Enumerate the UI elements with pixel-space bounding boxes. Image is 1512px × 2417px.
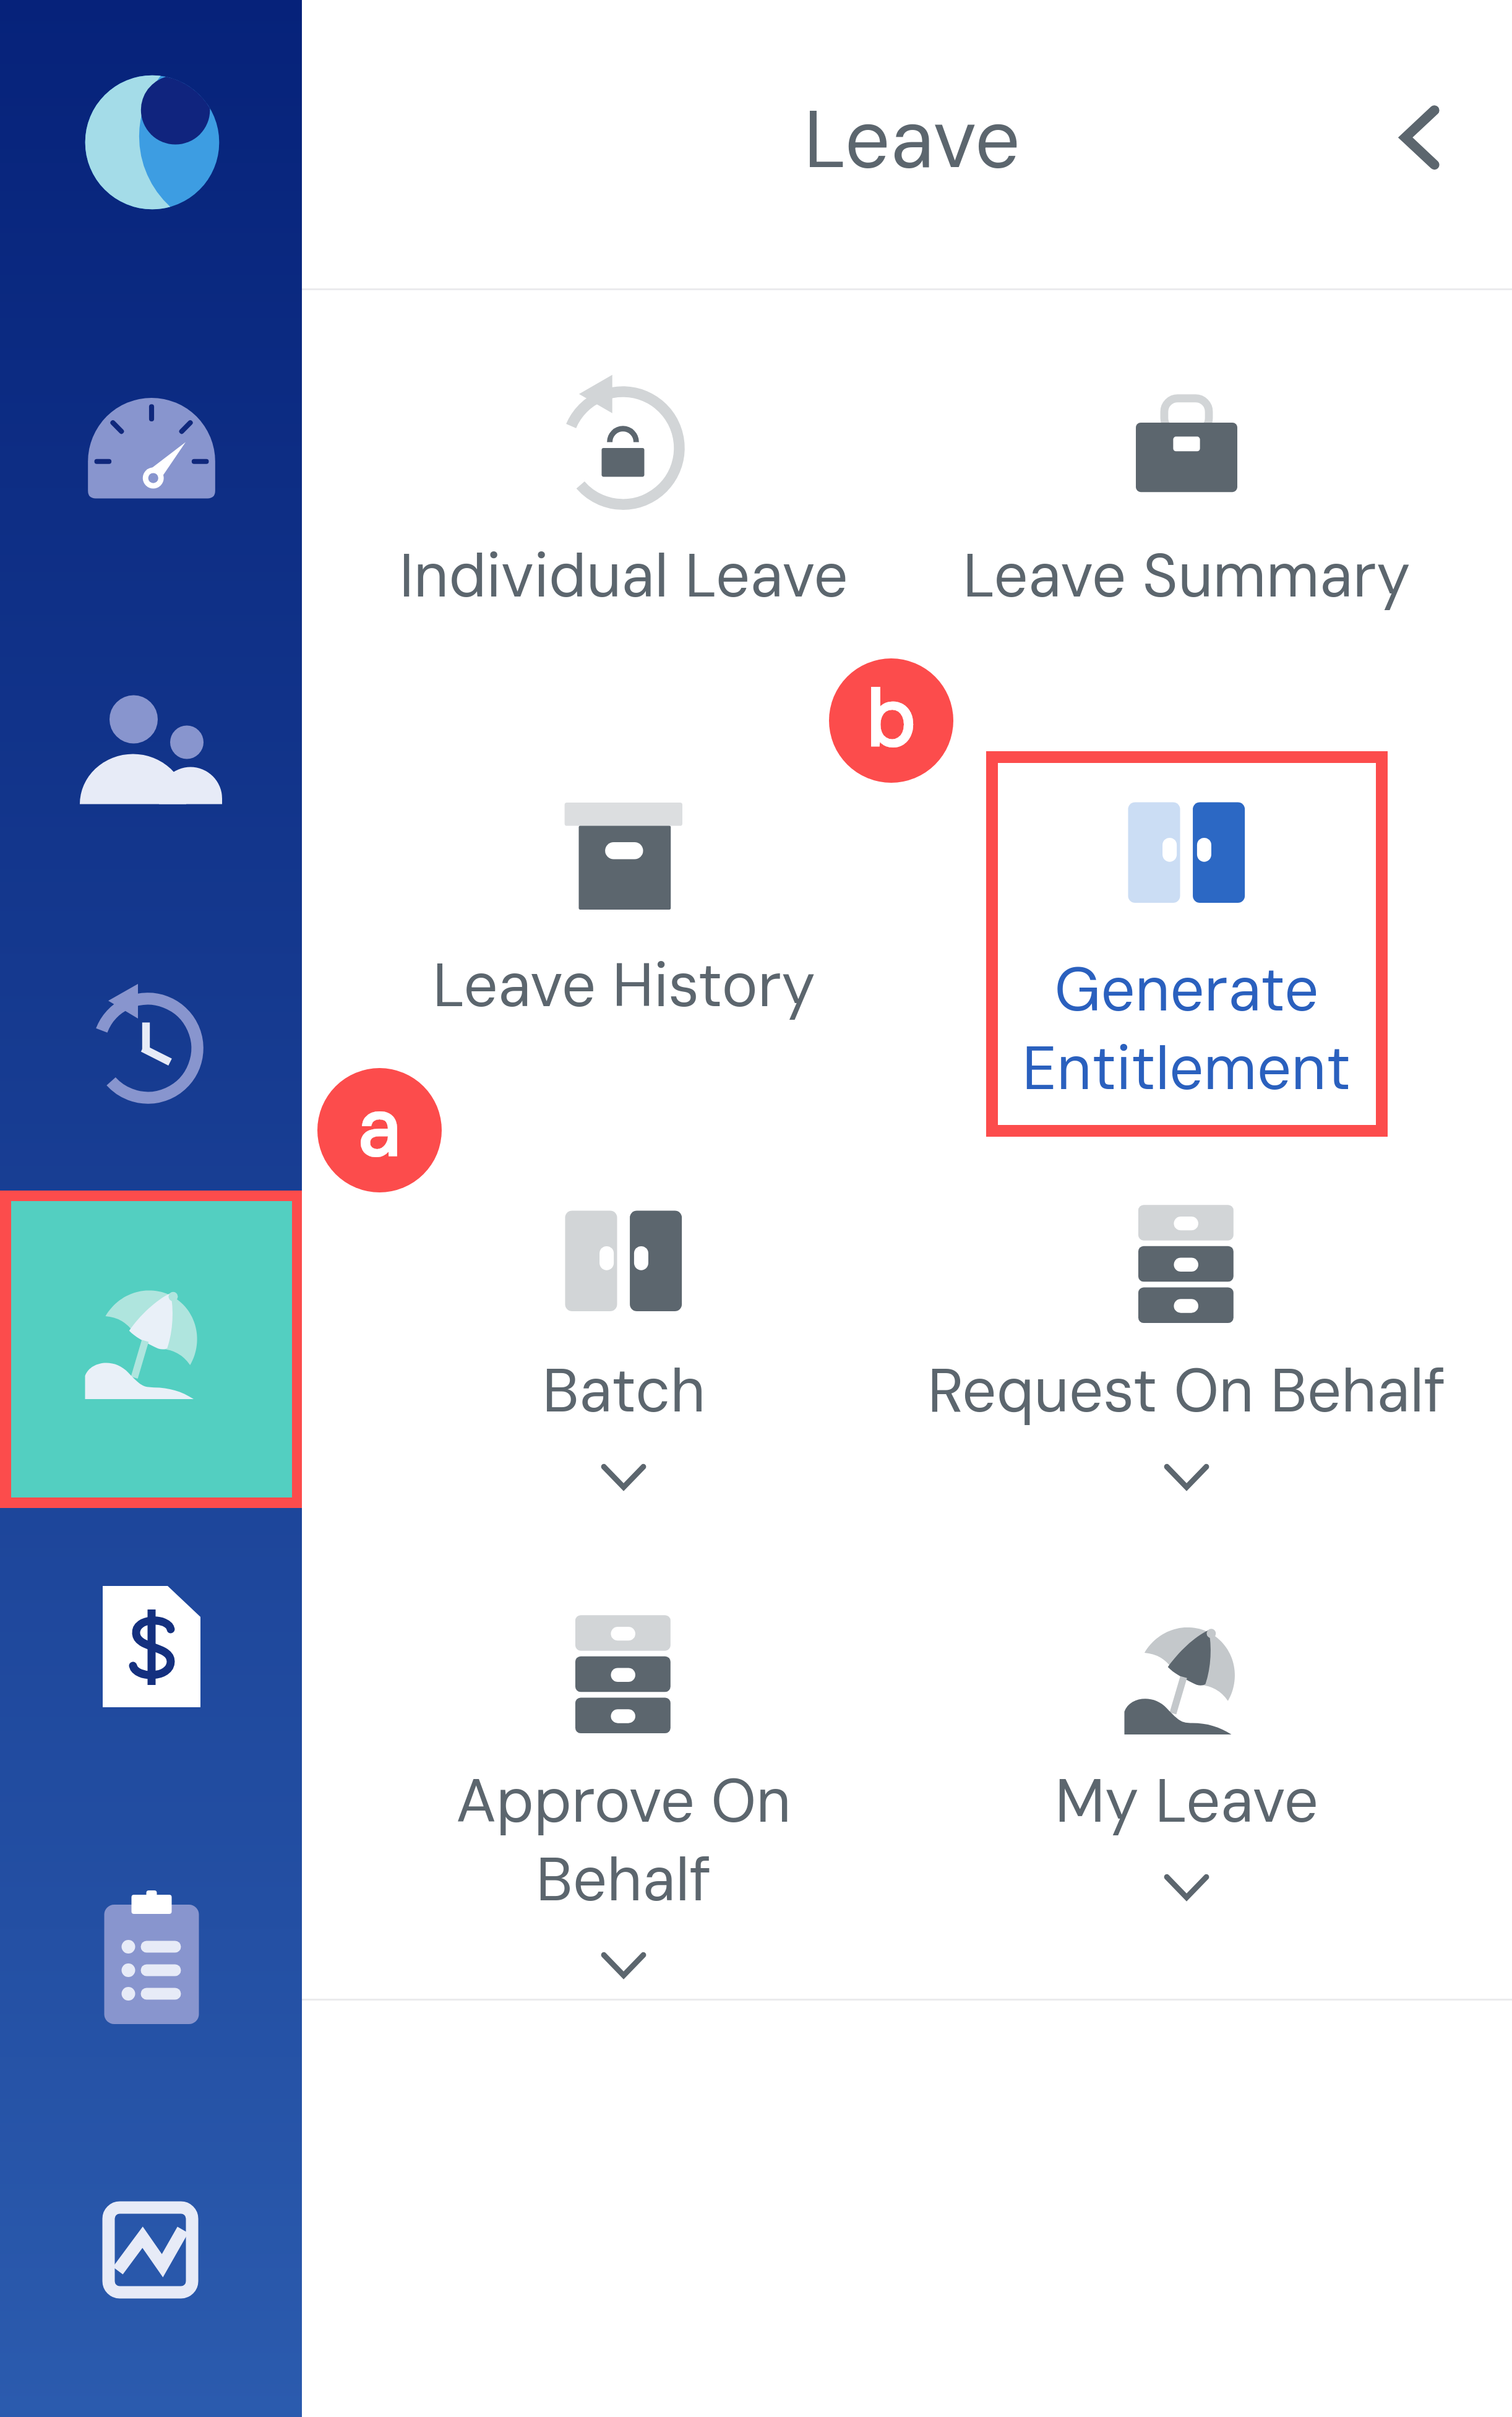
staticText: Leave History xyxy=(432,946,815,1025)
button[interactable]: Batch xyxy=(345,1197,902,1512)
button[interactable] xyxy=(998,763,1376,1125)
button[interactable]: My Leave xyxy=(908,1608,1465,1923)
button[interactable]: Request On Behalf xyxy=(908,1197,1465,1512)
button[interactable]: Leave Summary xyxy=(908,382,1465,616)
staticText: Generate Entitlement xyxy=(1022,950,1351,1108)
button[interactable]: Payroll xyxy=(90,1585,213,1708)
staticText: b xyxy=(867,666,916,770)
staticText: Individual Leave xyxy=(399,536,848,616)
staticText: Approve On Behalf xyxy=(456,1762,791,1919)
button[interactable]: History xyxy=(82,976,205,1100)
button[interactable]: Leave xyxy=(11,1201,292,1497)
button[interactable]: Back xyxy=(1381,87,1483,188)
button[interactable]: Leave History xyxy=(345,792,902,1025)
staticText: a xyxy=(358,1076,402,1179)
staticText: Batch xyxy=(542,1351,706,1431)
staticText: Leave xyxy=(751,87,1073,192)
button[interactable]: Dashboard xyxy=(82,387,221,527)
staticText: My Leave xyxy=(1055,1762,1318,1841)
button[interactable]: Approve On Behalf xyxy=(345,1608,902,2001)
button[interactable]: Generate Entitlement xyxy=(908,789,1465,1108)
button[interactable]: App logo xyxy=(79,69,225,215)
button[interactable]: Individual Leave xyxy=(345,382,902,616)
button[interactable]: Tasks xyxy=(84,1889,220,2025)
button[interactable]: Employees xyxy=(80,679,222,821)
button[interactable]: Reports xyxy=(97,2197,204,2303)
staticText: Leave Summary xyxy=(963,536,1411,616)
staticText: Request On Behalf xyxy=(927,1351,1446,1431)
